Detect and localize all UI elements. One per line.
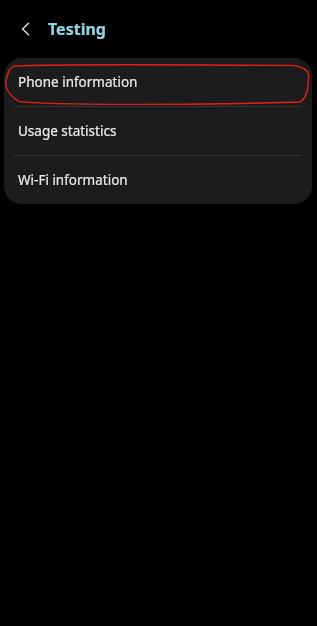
button[interactable]: Usage statistics [4,107,312,155]
staticText: Wi-Fi information [18,171,128,189]
button[interactable]: Back [10,13,42,45]
staticText: Phone information [18,73,138,91]
staticText: Usage statistics [18,122,117,140]
button[interactable]: Phone information [4,58,312,106]
button[interactable]: Wi-Fi information [4,156,312,204]
staticText: Testing [48,18,106,40]
